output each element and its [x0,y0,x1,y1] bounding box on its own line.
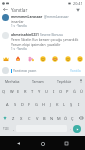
staticText: D [21,102,24,107]
button[interactable]: ahmetsahin0231 [0,32,85,51]
staticText: Ç [71,116,74,121]
button[interactable]: E [15,86,22,97]
button[interactable]: W [8,86,15,97]
button[interactable]: Y [36,86,43,97]
button[interactable]: Shift [0,112,9,124]
staticText: 1 s · Yanıtla [11,24,27,28]
staticText: Z [12,116,15,121]
staticText: mmmmmLarasaar [11,14,43,19]
button[interactable]: Recents [61,138,72,149]
button[interactable]: Emoji [38,54,47,63]
button[interactable]: Tamam [25,76,51,86]
staticText: insanlar [11,19,24,24]
button[interactable]: D [19,98,26,110]
button[interactable]: Home [37,138,48,149]
button[interactable]: S [11,98,19,110]
button[interactable]: I [50,86,57,97]
staticText: H [42,102,45,107]
staticText: R [24,89,27,94]
button[interactable]: C [25,112,33,124]
button[interactable]: B [41,112,48,124]
staticText: ahmetsahin0231 [11,32,39,37]
button[interactable]: I [75,98,82,110]
button[interactable]: Teşekkür [51,76,77,86]
staticText: . [70,127,71,131]
staticText: A [6,102,9,107]
staticText: I [53,89,55,94]
button[interactable]: Back [13,138,24,149]
button[interactable]: Comma [11,122,16,135]
button[interactable]: O [57,86,64,97]
button[interactable]: Emoji [75,54,84,63]
button[interactable]: X [17,112,25,124]
staticText: Teşekkür [57,79,72,84]
button[interactable]: Back [2,6,9,13]
staticText: B [43,116,46,121]
staticText: Y [38,89,41,94]
button[interactable]: G [33,98,40,110]
staticText: Ö [64,116,68,121]
button[interactable]: P [64,86,71,97]
button[interactable]: Q [0,86,8,97]
button[interactable]: Emoji [63,54,72,63]
button[interactable]: N [48,112,55,124]
staticText: J [50,102,52,107]
staticText: @mmmLarasaar yanıtladı [44,15,83,19]
staticText: Yanıtlar [11,7,28,13]
staticText: M [57,116,61,121]
button[interactable]: Yanıtla [69,67,82,74]
staticText: U [45,89,48,94]
button[interactable]: Ç [69,112,76,124]
button[interactable]: U [43,86,50,97]
staticText: E [17,89,20,94]
staticText: Sevene Bonusu [40,33,63,37]
button[interactable]: ?123 [0,122,11,135]
staticText: P [66,89,69,94]
staticText: Q [2,89,6,94]
staticText: Yanıtla [70,68,81,73]
button[interactable]: Ğ [71,86,78,97]
button[interactable]: H [40,98,47,110]
button[interactable]: Z [9,112,17,124]
button[interactable]: Ş [68,98,75,110]
button[interactable]: Emoji [50,54,59,63]
staticText: , [13,127,14,131]
button[interactable]: V [33,112,41,124]
button[interactable]: R [22,86,29,97]
button[interactable]: L [61,98,68,110]
staticText: Yanıtınızı yazın [13,68,37,73]
button[interactable]: A [3,98,11,110]
button[interactable]: M [55,112,62,124]
button[interactable]: Emoji [26,54,35,63]
button[interactable]: Emoji [1,54,10,63]
button[interactable]: Send [73,125,81,133]
staticText: W [10,89,14,94]
staticText: T [31,89,34,94]
staticText: X [20,116,23,121]
button[interactable]: J [47,98,54,110]
button[interactable]: Share [74,6,81,13]
button[interactable]: Backspace [76,112,85,124]
staticText: S [14,102,17,107]
staticText: F [28,102,31,107]
button[interactable]: Merhaba [0,76,25,86]
button[interactable]: Emoji [13,54,22,63]
button[interactable]: Voice input [77,76,85,86]
button[interactable]: Ö [62,112,69,124]
button[interactable]: K [54,98,61,110]
staticText: Ş [70,102,73,107]
staticText: I [78,102,80,107]
staticText: V [36,116,39,121]
button[interactable]: F [26,98,33,110]
button[interactable]: mmmmmLarasaar [0,14,85,28]
staticText: N [50,116,54,121]
button[interactable]: T [29,86,36,97]
staticText: C [28,116,31,121]
staticText: ?123 [3,127,9,131]
staticText: Yorum ekipi ipsimdan yazabilir [11,42,61,47]
staticText: Ü [80,89,83,94]
button[interactable]: Ü [78,86,85,97]
staticText: Merhaba [5,79,20,84]
